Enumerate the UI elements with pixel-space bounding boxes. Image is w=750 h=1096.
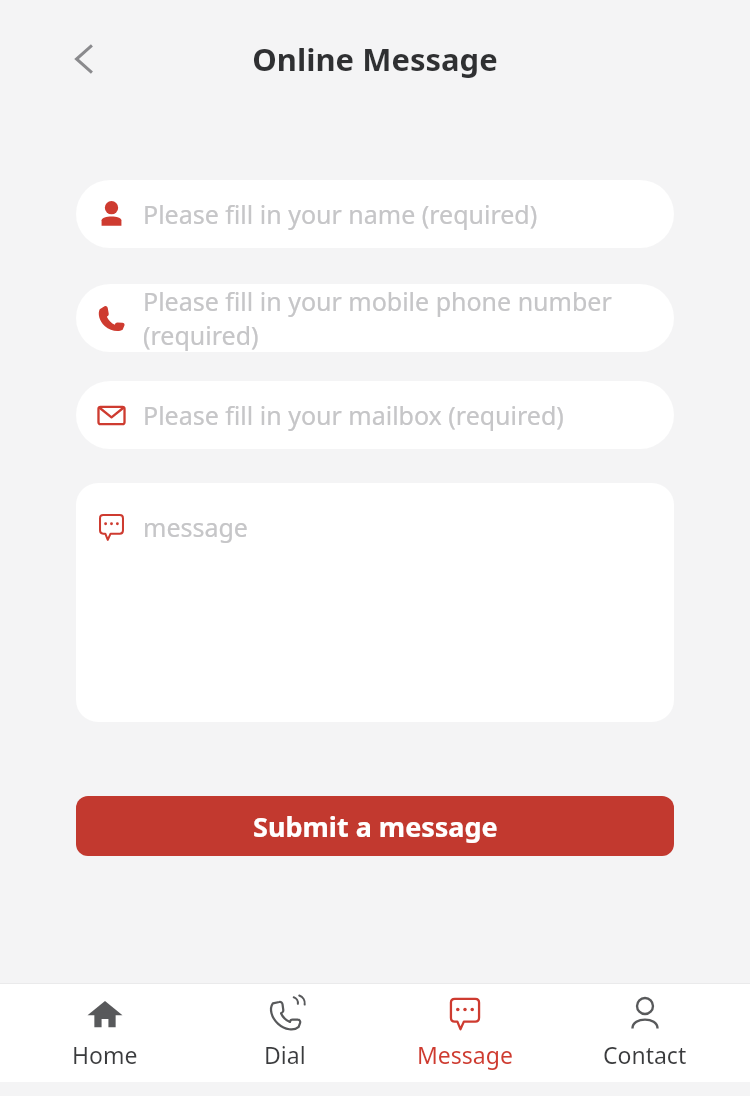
staticText: Message — [417, 1039, 513, 1070]
staticText: Dial — [264, 1039, 306, 1070]
button[interactable]: Back — [52, 27, 116, 91]
button[interactable]: Please fill in your mobile phone number … — [76, 284, 674, 352]
staticText: message — [143, 510, 248, 544]
button[interactable]: Please fill in your name (required) — [76, 180, 674, 248]
button[interactable]: Dial — [210, 989, 360, 1076]
button[interactable]: Message — [390, 989, 540, 1076]
staticText: Please fill in your mailbox (required) — [143, 398, 564, 432]
staticText: Home — [72, 1039, 138, 1070]
staticText: Online Message — [252, 38, 498, 80]
staticText: Please fill in your name (required) — [143, 197, 538, 231]
staticText: Please fill in your mobile phone number … — [143, 284, 674, 352]
button[interactable]: Home — [30, 989, 180, 1076]
button[interactable]: Submit a message — [76, 796, 674, 856]
button[interactable]: Contact — [570, 989, 720, 1076]
staticText: Submit a message — [253, 808, 498, 845]
button[interactable]: message — [76, 483, 674, 722]
button[interactable]: Please fill in your mailbox (required) — [76, 381, 674, 449]
staticText: Contact — [603, 1039, 687, 1070]
